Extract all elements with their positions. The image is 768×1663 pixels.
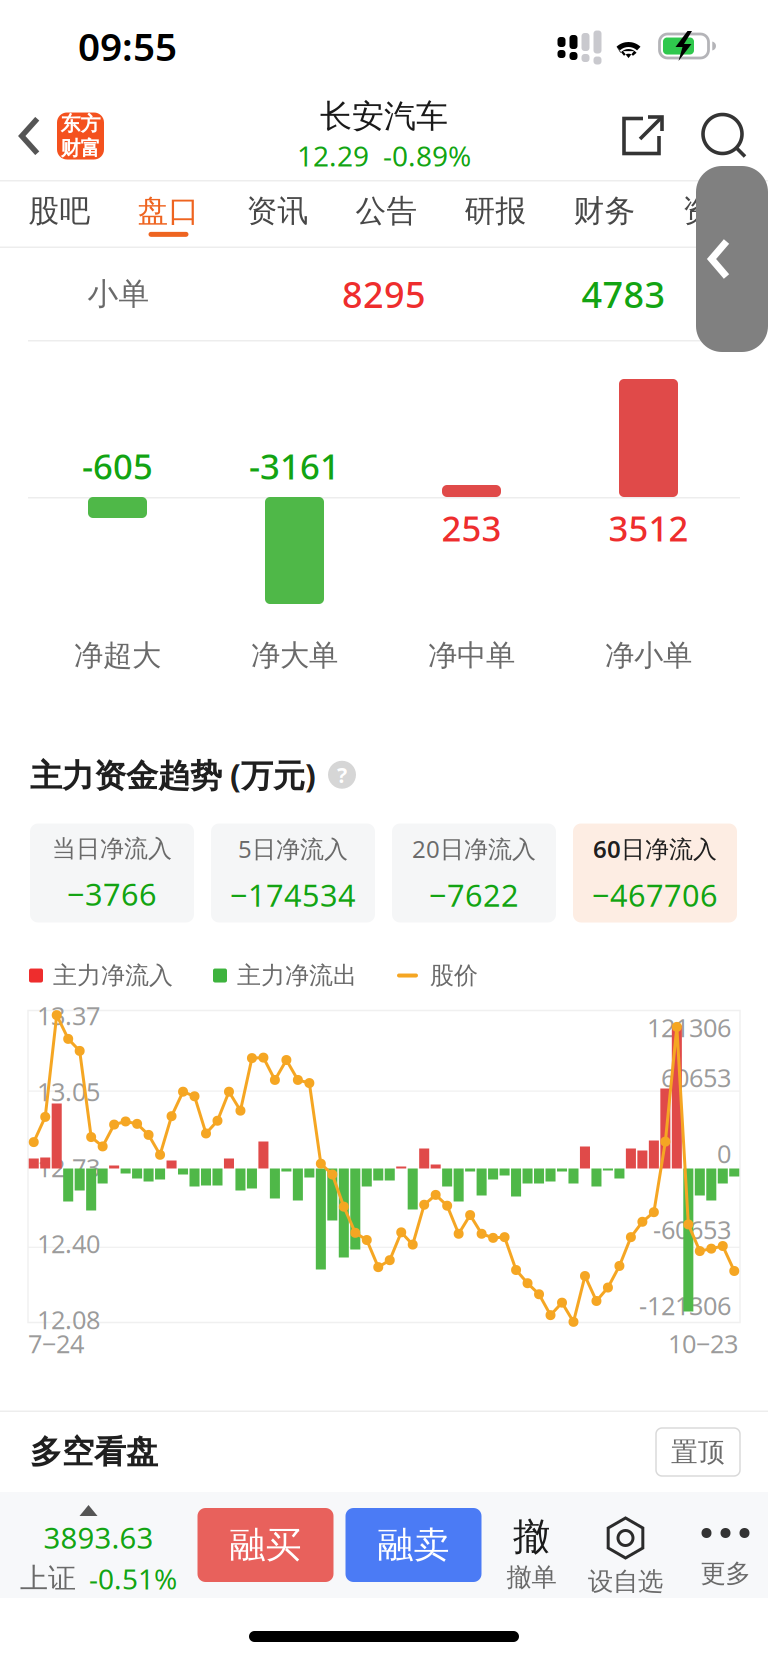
button[interactable]: 20日净流入 xyxy=(392,823,556,922)
staticText: 121306 xyxy=(647,1011,731,1044)
staticText: 财务 xyxy=(573,192,635,230)
button[interactable]: 财务 xyxy=(550,181,659,246)
button[interactable]: 设自选 xyxy=(573,1492,677,1598)
button[interactable]: Expand panel xyxy=(696,166,768,352)
button[interactable]: 股吧 xyxy=(5,181,114,246)
staticText: 12.73 xyxy=(37,1151,100,1184)
staticText: 253 xyxy=(441,505,501,551)
staticText: ? xyxy=(337,761,347,789)
staticText: 资料 xyxy=(682,192,744,230)
staticText: 研报 xyxy=(464,192,526,230)
staticText: 东方 xyxy=(60,111,100,136)
button[interactable]: 置顶 xyxy=(656,1428,740,1476)
staticText: 60日净流入 xyxy=(593,833,717,865)
staticText: -121306 xyxy=(639,1289,731,1322)
button[interactable]: 当日净流入 xyxy=(30,823,194,922)
staticText: 股价 xyxy=(430,961,478,990)
staticText: 12.40 xyxy=(37,1227,100,1260)
staticText: 融买 xyxy=(229,1523,301,1567)
staticText: 多空看盘 xyxy=(30,1432,158,1472)
staticText: -0.51% xyxy=(89,1560,177,1597)
staticText: -60653 xyxy=(653,1213,731,1246)
button[interactable]: Share xyxy=(622,108,664,164)
button[interactable]: 融买 xyxy=(197,1508,333,1582)
staticText: 3893.63 xyxy=(43,1518,153,1557)
button[interactable]: 60日净流入 xyxy=(573,823,737,922)
staticText: 主力净流出 xyxy=(237,961,357,990)
button[interactable]: 更多 xyxy=(677,1492,768,1598)
button[interactable]: 融卖 xyxy=(345,1508,481,1582)
staticText: -3161 xyxy=(249,443,340,489)
staticText: 置顶 xyxy=(671,1436,725,1468)
button[interactable]: 3893.63 xyxy=(0,1492,197,1598)
staticText: 10−23 xyxy=(668,1327,738,1360)
staticText: 09:55 xyxy=(78,20,177,72)
staticText: 净中单 xyxy=(428,637,515,673)
staticText: 撤单 xyxy=(506,1562,556,1593)
staticText: −3766 xyxy=(67,873,157,914)
staticText: 净超大 xyxy=(74,637,161,673)
staticText: 0 xyxy=(717,1137,731,1170)
staticText: 净小单 xyxy=(605,637,692,673)
staticText: 8295 xyxy=(342,270,426,318)
staticText: 小单 xyxy=(87,275,149,313)
staticText: 60653 xyxy=(661,1061,731,1094)
button[interactable]: Back xyxy=(0,92,114,180)
staticText: 撤 xyxy=(513,1514,550,1560)
staticText: 20日净流入 xyxy=(412,833,536,865)
staticText: 公告 xyxy=(355,192,417,230)
staticText: 12.29 -0.89% xyxy=(297,137,471,174)
staticText: 设自选 xyxy=(588,1566,663,1597)
staticText: 长安汽车 xyxy=(320,97,448,136)
staticText: 股吧 xyxy=(28,192,90,230)
staticText: −467706 xyxy=(592,875,718,915)
staticText: 主力净流入 xyxy=(53,961,173,990)
staticText: 当日净流入 xyxy=(52,834,172,863)
button[interactable]: 公告 xyxy=(332,181,441,246)
staticText: 更多 xyxy=(700,1558,750,1589)
button[interactable]: 撤 xyxy=(489,1492,573,1598)
staticText: 盘口 xyxy=(137,192,199,230)
staticText: 资讯 xyxy=(246,192,308,230)
button[interactable]: 资讯 xyxy=(223,181,332,246)
staticText: 12.08 xyxy=(37,1303,100,1336)
staticText: -605 xyxy=(82,443,153,489)
staticText: 财富 xyxy=(60,136,100,161)
button[interactable]: Help xyxy=(328,761,356,789)
staticText: 7−24 xyxy=(28,1327,84,1360)
staticText: 4783 xyxy=(581,270,665,318)
staticText: 5日净流入 xyxy=(238,833,348,865)
button[interactable]: 资料 xyxy=(659,181,768,246)
staticText: −7622 xyxy=(429,875,519,915)
staticText: 13.37 xyxy=(37,999,100,1032)
button[interactable]: 盘口 xyxy=(114,181,223,246)
staticText: 3512 xyxy=(608,505,688,551)
staticText: 融卖 xyxy=(377,1523,449,1567)
staticText: −174534 xyxy=(230,875,356,915)
staticText: 净大单 xyxy=(251,637,338,673)
staticText: 主力资金趋势 (万元) xyxy=(30,753,316,796)
staticText: 13.05 xyxy=(37,1075,100,1108)
button[interactable]: 研报 xyxy=(441,181,550,246)
staticText: 上证 xyxy=(20,1561,76,1596)
button[interactable]: 5日净流入 xyxy=(211,823,375,922)
button[interactable]: Search xyxy=(703,108,746,164)
